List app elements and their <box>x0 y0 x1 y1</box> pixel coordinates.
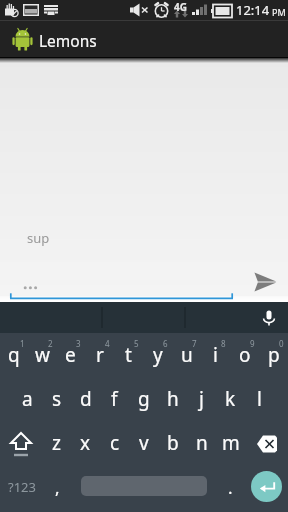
button[interactable]: 5 <box>114 334 143 378</box>
button[interactable]: , <box>43 466 72 510</box>
button[interactable]: . <box>216 466 245 510</box>
staticText: r <box>96 342 104 368</box>
button[interactable]: ?123 <box>0 466 43 510</box>
staticText: n <box>196 430 208 456</box>
button[interactable]: Shift <box>0 422 42 466</box>
button[interactable]: n <box>187 422 216 466</box>
button[interactable]: f <box>100 378 129 422</box>
staticText: PM <box>272 6 286 18</box>
staticText: t <box>125 342 132 368</box>
staticText: sup <box>27 229 50 247</box>
staticText: x <box>80 430 91 456</box>
staticText: 3 <box>76 338 81 349</box>
staticText: v <box>139 430 149 456</box>
button[interactable]: l <box>245 378 274 422</box>
button[interactable]: v <box>129 422 158 466</box>
staticText: z <box>52 430 61 456</box>
button[interactable]: m <box>216 422 245 466</box>
button[interactable]: c <box>100 422 129 466</box>
button[interactable]: 7 <box>172 334 201 378</box>
staticText: 9 <box>250 338 255 349</box>
staticText: y <box>153 342 163 368</box>
button[interactable]: 0 <box>259 334 288 378</box>
staticText: o <box>239 342 251 368</box>
staticText: i <box>213 342 218 368</box>
staticText: j <box>199 386 204 412</box>
staticText: 7 <box>192 338 197 349</box>
button[interactable]: 1 <box>0 334 28 378</box>
button[interactable]: z <box>42 422 71 466</box>
staticText: 4 <box>105 338 110 349</box>
button[interactable]: 9 <box>230 334 259 378</box>
button[interactable]: k <box>216 378 245 422</box>
button[interactable]: b <box>158 422 187 466</box>
button[interactable]: Space <box>72 466 216 510</box>
button[interactable]: d <box>71 378 100 422</box>
button[interactable] <box>6 272 238 302</box>
staticText: 12:14 <box>236 1 270 19</box>
staticText: h <box>167 386 179 412</box>
button[interactable]: Backspace <box>245 422 288 466</box>
staticText: m <box>222 430 240 456</box>
staticText: p <box>268 342 280 368</box>
button[interactable]: Send <box>244 261 286 303</box>
staticText: e <box>65 342 76 368</box>
staticText: 8 <box>221 338 226 349</box>
button[interactable]: 8 <box>201 334 230 378</box>
staticText: k <box>225 386 236 412</box>
button[interactable]: Enter <box>245 466 288 510</box>
button[interactable]: a <box>13 378 42 422</box>
staticText: g <box>138 386 150 412</box>
staticText: c <box>110 430 120 456</box>
staticText: d <box>80 386 92 412</box>
staticText: 6 <box>163 338 168 349</box>
staticText: f <box>111 386 118 412</box>
staticText: 2 <box>48 338 53 349</box>
staticText: . <box>228 476 233 499</box>
button[interactable]: g <box>129 378 158 422</box>
staticText: , <box>55 476 60 499</box>
button[interactable]: 2 <box>28 334 56 378</box>
button[interactable]: Voice input <box>254 303 284 333</box>
staticText: Lemons <box>39 30 97 51</box>
button[interactable]: h <box>158 378 187 422</box>
button[interactable]: j <box>187 378 216 422</box>
staticText: 0 <box>279 338 284 349</box>
button[interactable]: 3 <box>56 334 85 378</box>
staticText: q <box>8 342 20 368</box>
staticText: 1 <box>20 338 25 349</box>
staticText: u <box>181 342 193 368</box>
button[interactable]: s <box>42 378 71 422</box>
button[interactable]: 6 <box>143 334 172 378</box>
staticText: s <box>52 386 62 412</box>
staticText: ?123 <box>8 478 36 496</box>
button[interactable]: x <box>71 422 100 466</box>
staticText: l <box>257 386 262 412</box>
staticText: 4G <box>174 0 187 14</box>
staticText: b <box>167 430 179 456</box>
staticText: 5 <box>134 338 139 349</box>
staticText: a <box>22 386 33 412</box>
staticText: w <box>35 342 50 368</box>
button[interactable]: 4 <box>85 334 114 378</box>
